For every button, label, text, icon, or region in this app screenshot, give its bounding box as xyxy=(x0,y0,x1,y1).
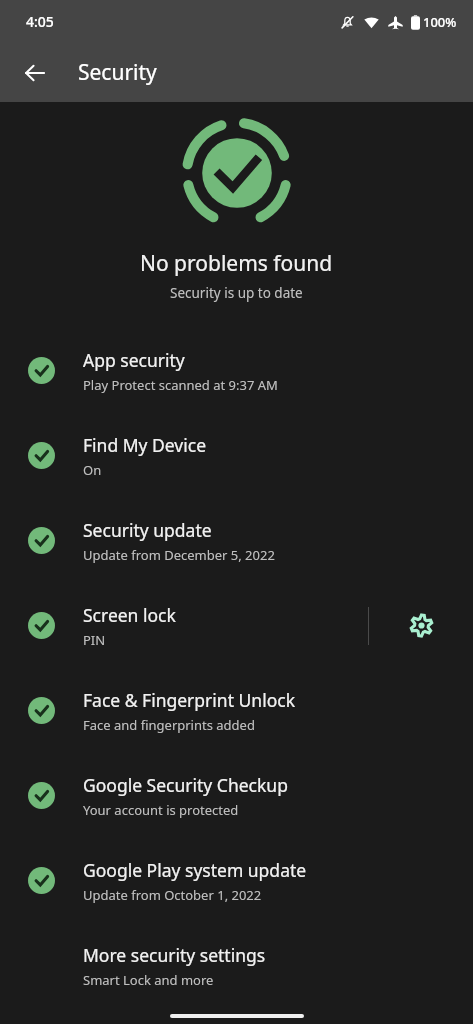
staticText: Update from December 5, 2022 xyxy=(83,546,275,564)
staticText: App security xyxy=(83,348,185,372)
staticText: Smart Lock and more xyxy=(83,971,214,989)
staticText: 4:05 xyxy=(26,12,54,31)
staticText: Google Security Checkup xyxy=(83,773,288,797)
staticText: PIN xyxy=(83,631,106,649)
button[interactable]: Screen lock settings xyxy=(369,583,473,668)
staticText: Security is up to date xyxy=(170,284,303,302)
staticText: Update from October 1, 2022 xyxy=(83,886,262,904)
staticText: Google Play system update xyxy=(83,858,307,882)
button[interactable]: Google Play system update xyxy=(0,838,473,923)
button[interactable]: App security xyxy=(0,328,473,413)
staticText: Face & Fingerprint Unlock xyxy=(83,688,295,712)
staticText: Face and fingerprints added xyxy=(83,716,255,734)
button[interactable]: Google Security Checkup xyxy=(0,753,473,838)
button[interactable]: More security settings xyxy=(0,923,473,1008)
staticText: 100% xyxy=(423,13,457,31)
staticText: Security update xyxy=(83,518,212,542)
staticText: Screen lock xyxy=(83,603,176,627)
staticText: On xyxy=(83,461,102,479)
button[interactable]: Face & Fingerprint Unlock xyxy=(0,668,473,753)
staticText: More security settings xyxy=(83,943,266,967)
staticText: Find My Device xyxy=(83,433,207,457)
staticText: Security xyxy=(78,58,157,87)
button[interactable]: Security update xyxy=(0,498,473,583)
staticText: Play Protect scanned at 9:37 AM xyxy=(83,376,278,394)
button[interactable]: Back xyxy=(14,52,56,94)
staticText: Your account is protected xyxy=(83,801,239,819)
staticText: No problems found xyxy=(140,249,333,278)
button[interactable]: Find My Device xyxy=(0,413,473,498)
button[interactable]: Screen lock xyxy=(0,583,473,668)
